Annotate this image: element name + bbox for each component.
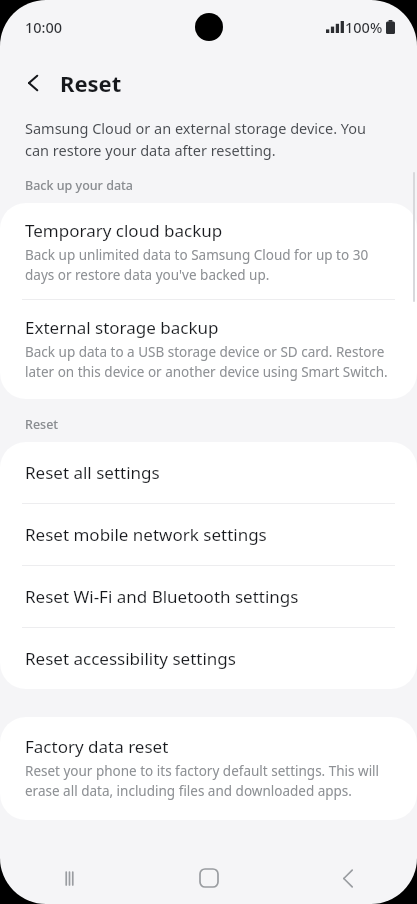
staticText: 100%	[345, 17, 383, 37]
staticText: Back up data to a USB storage device or …	[25, 343, 393, 381]
button[interactable]: Reset all settings	[0, 442, 417, 503]
staticText: Reset	[60, 68, 122, 98]
staticText: Back up unlimited data to Samsung Cloud …	[25, 246, 393, 284]
button[interactable]: Reset accessibility settings	[0, 628, 417, 689]
staticText: Reset Wi-Fi and Bluetooth settings	[25, 585, 299, 608]
staticText: Temporary cloud backup	[25, 219, 223, 242]
staticText: External storage backup	[25, 316, 219, 339]
button[interactable]: Factory data reset	[0, 717, 417, 820]
staticText: Reset your phone to its factory default …	[25, 762, 393, 800]
staticText: Reset	[25, 416, 59, 433]
button[interactable]: Reset mobile network settings	[0, 504, 417, 565]
button[interactable]: Back	[12, 61, 56, 105]
staticText: 10:00	[25, 17, 63, 37]
staticText: Reset all settings	[25, 461, 160, 484]
button[interactable]: Reset Wi-Fi and Bluetooth settings	[0, 566, 417, 627]
staticText: Reset mobile network settings	[25, 523, 267, 546]
button[interactable]: Back	[278, 852, 417, 904]
button[interactable]: Temporary cloud backup	[0, 203, 417, 299]
staticText: Samsung Cloud or an external storage dev…	[25, 118, 391, 160]
staticText: Reset accessibility settings	[25, 647, 236, 670]
staticText: Factory data reset	[25, 735, 169, 758]
button[interactable]: Recent apps	[0, 852, 139, 904]
button[interactable]: Home	[139, 852, 278, 904]
button[interactable]: External storage backup	[0, 300, 417, 399]
staticText: Back up your data	[25, 177, 133, 194]
